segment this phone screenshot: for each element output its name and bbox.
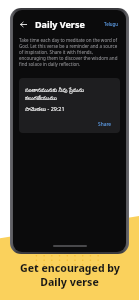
- button[interactable]: Share: [96, 120, 114, 129]
- staticText: Daily Verse: [35, 18, 85, 30]
- staticText: Daily verse: [40, 275, 99, 289]
- staticText: Take time each day to meditate on the wo…: [19, 37, 120, 67]
- staticText: Get encouraged by: [20, 261, 120, 275]
- staticText: సామెతలు - 29:21: [25, 105, 65, 113]
- button[interactable]: Telugu: [102, 19, 121, 29]
- staticText: సంతానమునకు నీవు ప్రేమను కలుగజేయుము: [25, 86, 114, 103]
- staticText: Telugu: [104, 21, 119, 27]
- button[interactable]: సంతానమునకు నీవు ప్రేమను కలుగజేయుము: [19, 78, 120, 133]
- button[interactable]: Back: [17, 18, 30, 31]
- staticText: Share: [98, 121, 112, 128]
